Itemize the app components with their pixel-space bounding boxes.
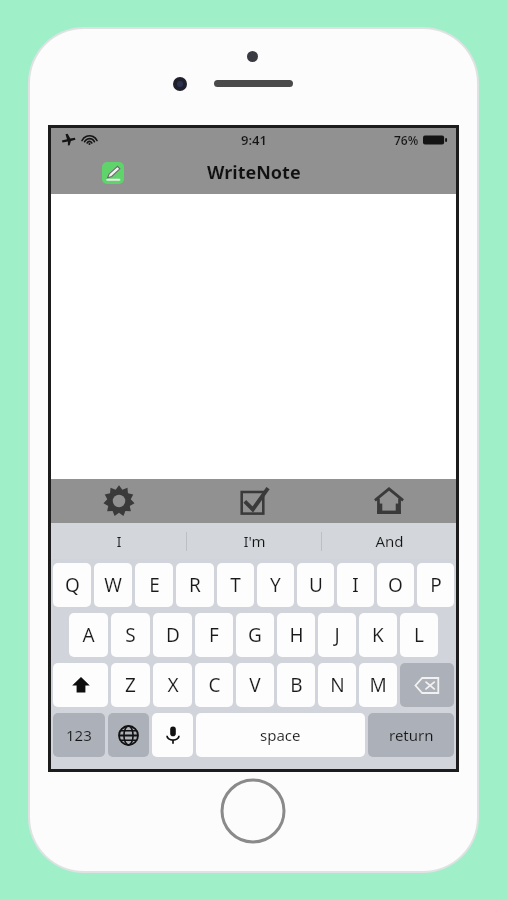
staticText: P [430, 572, 442, 598]
button[interactable]: E [135, 563, 173, 607]
button[interactable]: O [377, 563, 414, 607]
button[interactable]: R [176, 563, 214, 607]
button[interactable]: Backspace [400, 663, 454, 707]
staticText: B [290, 672, 303, 698]
staticText: Q [65, 572, 80, 598]
button[interactable]: WriteNote app icon [102, 162, 124, 184]
staticText: N [330, 672, 345, 698]
button[interactable]: Z [111, 663, 150, 707]
staticText: L [414, 622, 424, 648]
staticText: 9:41 [241, 131, 267, 149]
staticText: A [82, 622, 95, 648]
button[interactable]: M [359, 663, 397, 707]
staticText: X [167, 672, 179, 698]
button[interactable]: G [236, 613, 274, 657]
button[interactable]: I'm [187, 523, 321, 559]
button[interactable]: S [111, 613, 150, 657]
staticText: I'm [243, 531, 266, 551]
button[interactable]: Settings [51, 479, 186, 523]
staticText: E [149, 572, 160, 598]
staticText: return [389, 725, 434, 745]
staticText: H [289, 622, 304, 648]
button[interactable]: Home [321, 479, 456, 523]
staticText: D [166, 622, 180, 648]
button[interactable]: H [277, 613, 315, 657]
button[interactable]: C [195, 663, 233, 707]
staticText: S [125, 622, 136, 648]
button[interactable]: X [153, 663, 192, 707]
staticText: T [230, 572, 241, 598]
button[interactable]: A [69, 613, 108, 657]
button[interactable]: return [368, 713, 454, 757]
button[interactable]: F [195, 613, 233, 657]
button[interactable]: And [322, 523, 456, 559]
staticText: 76% [394, 132, 419, 148]
button[interactable]: J [318, 613, 356, 657]
button[interactable]: B [277, 663, 315, 707]
staticText: R [189, 572, 201, 598]
button[interactable]: space [196, 713, 365, 757]
staticText: M [369, 672, 387, 698]
button[interactable]: Tasks [186, 479, 321, 523]
staticText: I [116, 531, 122, 551]
staticText: V [249, 672, 261, 698]
staticText: O [388, 572, 403, 598]
staticText: G [248, 622, 262, 648]
button[interactable]: Shift [53, 663, 108, 707]
staticText: W [104, 572, 122, 598]
button[interactable]: 123 [53, 713, 105, 757]
button[interactable]: I [337, 563, 374, 607]
staticText: And [375, 531, 404, 551]
staticText: U [309, 572, 323, 598]
button[interactable]: L [400, 613, 438, 657]
button[interactable]: K [359, 613, 397, 657]
button[interactable]: Y [257, 563, 294, 607]
staticText: Y [270, 572, 281, 598]
button[interactable]: Change keyboard language [108, 713, 149, 757]
button[interactable]: P [417, 563, 454, 607]
button[interactable]: Dictate [152, 713, 193, 757]
button[interactable]: N [318, 663, 356, 707]
button[interactable]: W [94, 563, 132, 607]
staticText: space [260, 725, 301, 745]
button[interactable]: D [153, 613, 192, 657]
staticText: F [209, 622, 219, 648]
staticText: Z [125, 672, 136, 698]
staticText: WriteNote [207, 160, 301, 185]
staticText: J [334, 622, 340, 648]
button[interactable]: Q [53, 563, 91, 607]
staticText: K [372, 622, 384, 648]
button[interactable]: I [51, 523, 186, 559]
staticText: C [208, 672, 221, 698]
button[interactable]: U [297, 563, 334, 607]
staticText: 123 [66, 725, 92, 745]
button[interactable]: V [236, 663, 274, 707]
button[interactable]: T [217, 563, 254, 607]
staticText: I [352, 572, 359, 598]
